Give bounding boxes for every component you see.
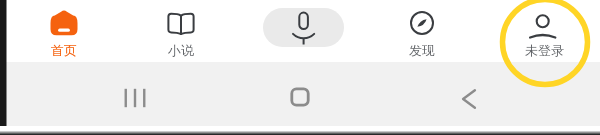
button[interactable]: Voice search <box>263 8 344 47</box>
button[interactable]: Back <box>447 77 491 121</box>
button[interactable]: Home <box>278 75 322 119</box>
button[interactable]: Novels <box>129 0 233 62</box>
button[interactable]: Home <box>12 0 116 62</box>
button[interactable]: Account <box>492 0 596 62</box>
staticText: 首页 <box>51 42 77 58</box>
staticText: 发现 <box>409 42 435 58</box>
staticText: 小说 <box>168 42 194 58</box>
button[interactable]: Recents <box>113 76 157 120</box>
staticText: 未登录 <box>525 42 564 58</box>
button[interactable]: Discover <box>370 0 474 62</box>
